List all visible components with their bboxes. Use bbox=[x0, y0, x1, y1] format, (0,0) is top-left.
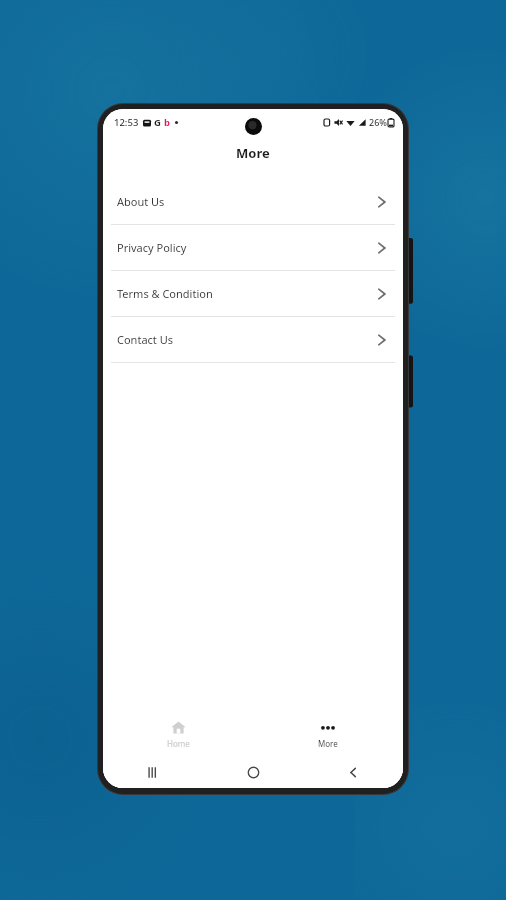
button[interactable]: More bbox=[253, 712, 403, 756]
staticText: G bbox=[154, 116, 161, 129]
button[interactable]: Terms & Condition bbox=[103, 271, 403, 316]
staticText: b bbox=[164, 116, 171, 129]
button[interactable]: Recent apps bbox=[103, 756, 203, 788]
staticText: Contact Us bbox=[117, 332, 373, 347]
staticText: More bbox=[318, 738, 338, 749]
staticText: 26% bbox=[369, 116, 387, 128]
button[interactable]: About Us bbox=[103, 179, 403, 224]
button[interactable]: Contact Us bbox=[103, 317, 403, 362]
staticText: Home bbox=[167, 738, 190, 749]
staticText: More bbox=[236, 144, 270, 162]
button[interactable]: Back bbox=[303, 756, 403, 788]
button[interactable]: Privacy Policy bbox=[103, 225, 403, 270]
staticText: Privacy Policy bbox=[117, 240, 373, 255]
staticText: About Us bbox=[117, 194, 373, 209]
button[interactable]: Home bbox=[103, 712, 253, 756]
staticText: 12:53 bbox=[114, 116, 139, 129]
button[interactable]: Home bbox=[203, 756, 303, 788]
staticText: Terms & Condition bbox=[117, 286, 373, 301]
